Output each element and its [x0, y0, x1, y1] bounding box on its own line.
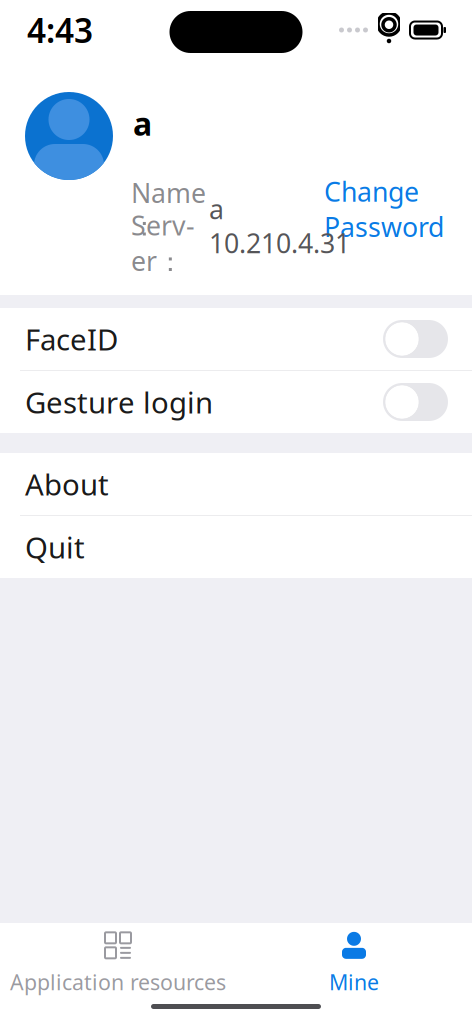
staticText: a	[133, 102, 152, 144]
staticText: a	[209, 191, 224, 227]
staticText: Application resources	[10, 968, 226, 996]
staticText: FaceID	[25, 319, 118, 358]
button[interactable]: Change Password	[324, 174, 444, 244]
staticText: Server：	[131, 207, 195, 278]
staticText: Gesture login	[25, 382, 213, 421]
staticText: 4:43	[27, 8, 93, 52]
button[interactable]: Quit	[0, 516, 472, 578]
button[interactable]: Application resources	[0, 922, 236, 996]
button[interactable]: FaceID	[0, 308, 472, 370]
staticText: Mine	[329, 968, 379, 996]
staticText: About	[25, 464, 109, 503]
staticText: Quit	[25, 527, 85, 566]
staticText: Change Password	[324, 174, 444, 244]
button[interactable]: Gesture login	[0, 371, 472, 433]
staticText: 10.210.4.31	[209, 225, 350, 261]
button[interactable]: About	[0, 453, 472, 515]
staticText: Name：	[131, 175, 206, 243]
button[interactable]: Mine	[236, 922, 472, 996]
